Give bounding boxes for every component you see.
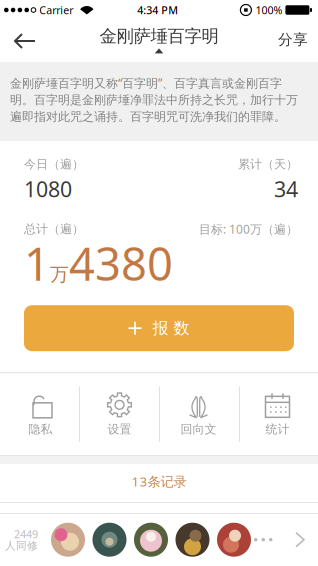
staticText: 人同修 [5, 539, 38, 552]
staticText: 万 [50, 263, 69, 286]
staticText: 遍即指对此咒之诵持。百字明咒可洗净我们的罪障。 [10, 109, 286, 124]
staticText: 设置 [107, 422, 131, 436]
staticText: 目标: 100万（遍） [199, 221, 298, 237]
staticText: 34 [274, 175, 298, 203]
button[interactable]: 报 数 [24, 305, 294, 351]
button[interactable]: 回向文 [159, 373, 238, 455]
staticText: 统计 [265, 422, 289, 436]
staticText: 累计（天） [238, 157, 298, 172]
staticText: 回向文 [180, 422, 216, 436]
staticText: 4380 [69, 233, 173, 293]
staticText: 金刚萨埵百字明 [99, 26, 218, 47]
staticText: 4:34 PM [137, 3, 178, 17]
staticText: 金刚萨埵百字明又称“百字明”、百字真言或金刚百字 [10, 75, 282, 91]
button[interactable]: 设置 [80, 373, 159, 455]
button[interactable]: 2449 [0, 514, 318, 565]
staticText: 分享 [278, 30, 308, 48]
staticText: 2449 [14, 527, 38, 541]
staticText: 100% [255, 3, 282, 17]
staticText: 隐私 [28, 422, 52, 436]
button[interactable]: 分享 [278, 20, 318, 62]
staticText: 今日（遍） [24, 157, 84, 172]
button[interactable]: 隐私 [1, 373, 80, 455]
staticText: 报 数 [152, 318, 189, 338]
staticText: 13条记录 [131, 472, 186, 490]
button[interactable]: 统计 [238, 373, 317, 455]
staticText: 明。百字明是金刚萨埵净罪法中所持之长咒，加行十万 [10, 93, 298, 107]
staticText: Carrier [39, 3, 73, 17]
button[interactable]: Back [0, 21, 35, 61]
staticText: 总计（遍） [24, 222, 84, 236]
staticText: 1080 [24, 175, 72, 203]
button[interactable]: 13条记录 [0, 464, 318, 502]
button[interactable]: 金刚萨埵百字明 [99, 27, 218, 55]
staticText: 1 [24, 233, 50, 293]
